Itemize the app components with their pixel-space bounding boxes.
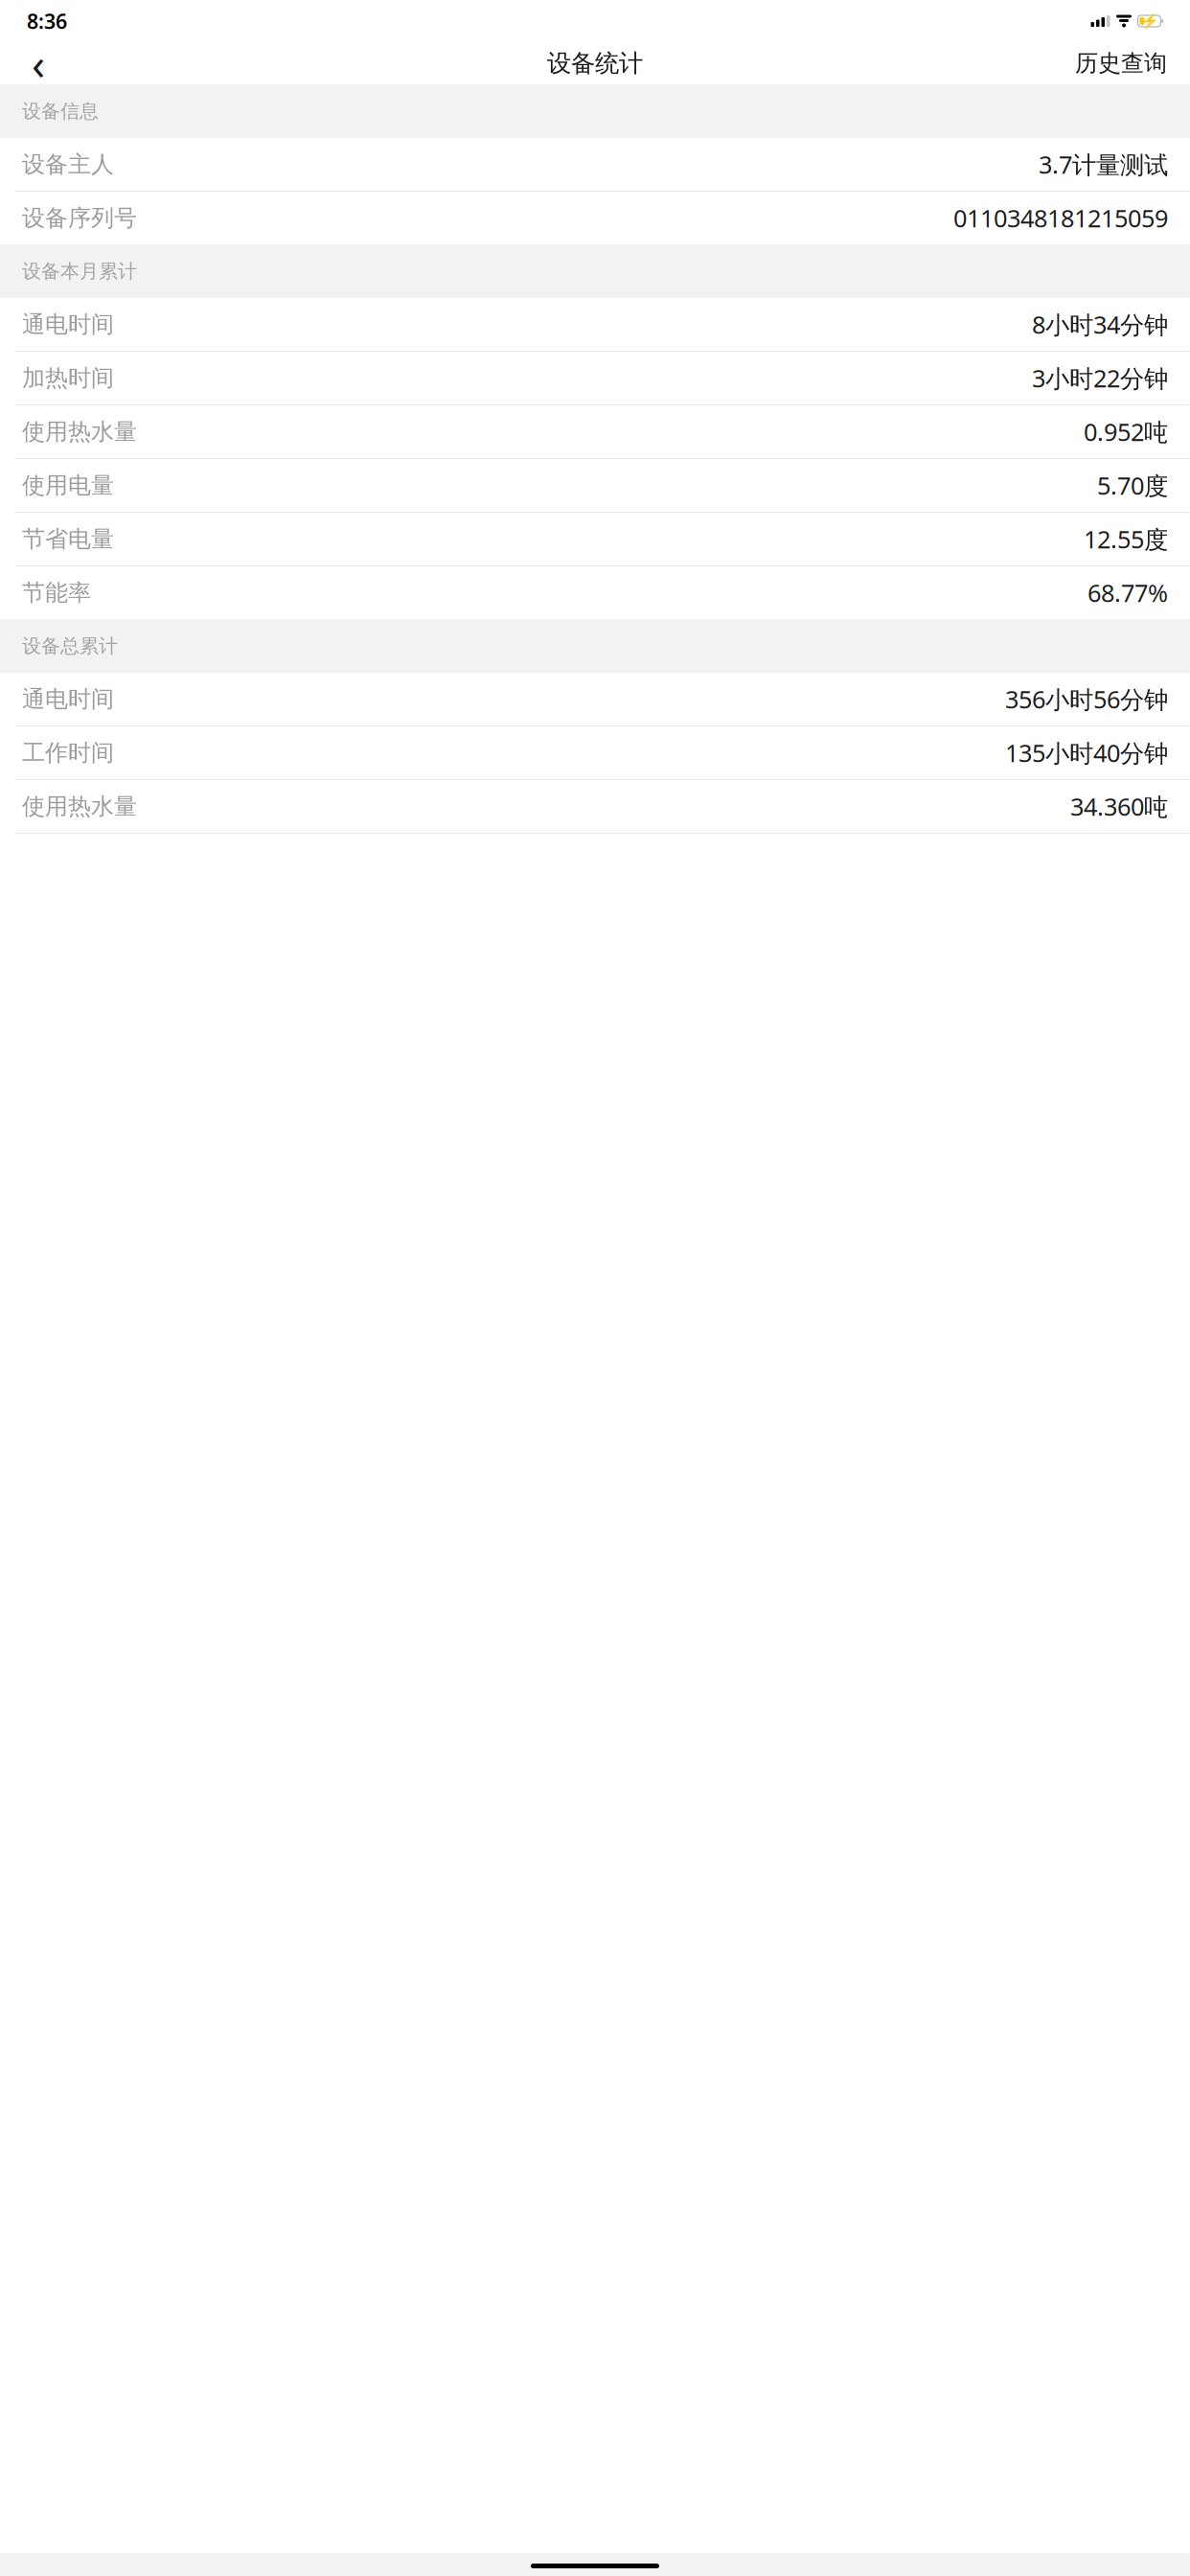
button[interactable]: 工作时间 — [0, 726, 1190, 780]
staticText: 设备总累计 — [22, 634, 118, 658]
staticText: ⚡ — [1141, 13, 1158, 29]
staticText: 设备信息 — [22, 99, 99, 123]
staticText: 工作时间 — [22, 739, 114, 767]
button[interactable]: 设备序列号 — [0, 192, 1190, 244]
staticText: 12.55度 — [1084, 523, 1168, 555]
button[interactable]: 通电时间 — [0, 298, 1190, 352]
button[interactable]: 返回 — [17, 42, 59, 84]
staticText: 节能率 — [22, 579, 91, 607]
staticText: 0.952吨 — [1084, 416, 1168, 448]
staticText: 设备统计 — [547, 48, 643, 78]
staticText: 68.77% — [1087, 577, 1168, 609]
staticText: 使用电量 — [22, 471, 114, 500]
button[interactable]: 使用热水量 — [0, 405, 1190, 459]
staticText: ‹ — [32, 34, 45, 92]
staticText: 设备主人 — [22, 150, 114, 179]
staticText: 设备序列号 — [22, 204, 137, 232]
button[interactable]: 使用电量 — [0, 459, 1190, 513]
staticText: 3小时22分钟 — [1032, 362, 1168, 394]
staticText: 通电时间 — [22, 310, 114, 339]
staticText: 历史查询 — [1075, 49, 1167, 77]
staticText: 设备本月累计 — [22, 259, 137, 283]
button[interactable]: 加热时间 — [0, 352, 1190, 405]
button[interactable]: 通电时间 — [0, 673, 1190, 726]
staticText: 8小时34分钟 — [1032, 308, 1168, 340]
staticText: 通电时间 — [22, 685, 114, 713]
staticText: 3.7计量测试 — [1039, 148, 1168, 180]
staticText: 加热时间 — [22, 364, 114, 392]
button[interactable]: 节能率 — [0, 566, 1190, 619]
staticText: 使用热水量 — [22, 418, 137, 446]
button[interactable]: 设备主人 — [0, 138, 1190, 192]
staticText: 0110348181215059 — [953, 202, 1168, 234]
button[interactable]: 节省电量 — [0, 513, 1190, 566]
staticText: 5.70度 — [1097, 469, 1168, 501]
button[interactable]: 使用热水量 — [0, 780, 1190, 834]
button[interactable]: 历史查询 — [1069, 42, 1173, 84]
staticText: 使用热水量 — [22, 792, 137, 821]
staticText: 节省电量 — [22, 525, 114, 553]
staticText: 356小时56分钟 — [1005, 683, 1168, 715]
staticText: 34.360吨 — [1070, 790, 1168, 823]
staticText: 8:36 — [27, 7, 67, 35]
staticText: 135小时40分钟 — [1005, 737, 1168, 769]
